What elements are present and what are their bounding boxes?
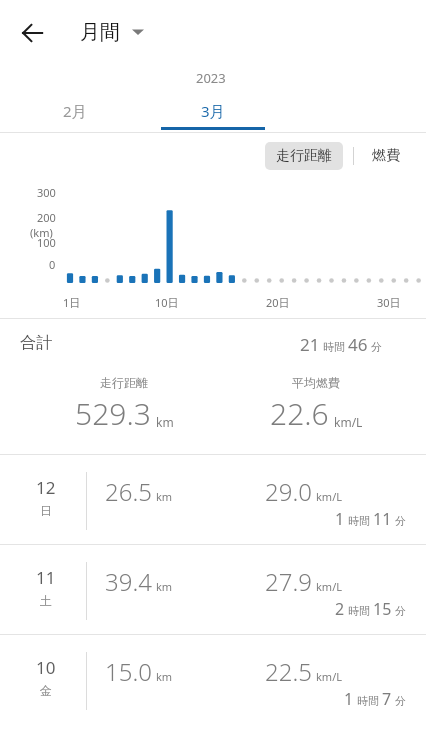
staticText: 27.9 <box>265 565 312 598</box>
staticText: 0 <box>49 257 56 272</box>
staticText: 分 <box>395 514 406 528</box>
staticText: 29.0 <box>265 475 312 508</box>
staticText: 土 <box>40 593 52 608</box>
staticText: km <box>156 669 173 684</box>
staticText: 39.4 <box>105 565 152 598</box>
staticText: 日 <box>40 503 52 518</box>
staticText: 合計 <box>20 333 52 353</box>
staticText: 平均燃費 <box>292 375 340 390</box>
staticText: 月間 <box>80 20 120 45</box>
staticText: 分 <box>395 604 406 618</box>
staticText: 46 <box>348 333 368 356</box>
staticText: km/L <box>316 489 343 504</box>
staticText: km <box>156 579 173 594</box>
staticText: 200 <box>37 210 56 225</box>
staticText: 10日 <box>155 295 179 310</box>
button[interactable]: 走行距離 <box>265 142 343 170</box>
staticText: 15 <box>373 598 392 620</box>
button[interactable]: 合計 <box>0 319 426 454</box>
staticText: 22.5 <box>265 655 312 688</box>
button[interactable]: 2月 <box>0 92 150 130</box>
staticText: 11 <box>36 566 56 589</box>
button[interactable]: Back <box>12 13 52 53</box>
staticText: 26.5 <box>105 475 152 508</box>
button[interactable]: 10 <box>0 635 426 724</box>
staticText: 金 <box>40 683 52 698</box>
staticText: 20日 <box>266 295 290 310</box>
staticText: km/L <box>334 414 363 430</box>
staticText: (km) <box>30 225 53 240</box>
staticText: 21 <box>300 333 320 356</box>
staticText: 22.6 <box>270 393 329 434</box>
button[interactable]: 3月 <box>150 92 276 130</box>
staticText: 走行距離 <box>276 147 332 165</box>
staticText: 時間 <box>323 340 345 354</box>
staticText: 1 <box>335 508 345 530</box>
button[interactable]: 燃費 <box>364 142 408 170</box>
staticText: km <box>156 489 173 504</box>
button[interactable]: 12 <box>0 455 426 544</box>
button[interactable]: 11 <box>0 545 426 634</box>
staticText: km/L <box>316 579 343 594</box>
staticText: 時間 <box>357 694 379 708</box>
staticText: 11 <box>373 508 392 530</box>
button[interactable]: 月間 <box>74 14 150 50</box>
staticText: 12 <box>36 476 56 499</box>
staticText: 100 <box>37 235 56 250</box>
staticText: 10 <box>36 656 56 679</box>
staticText: 300 <box>37 185 56 200</box>
staticText: km/L <box>316 669 343 684</box>
staticText: 1 <box>344 688 354 710</box>
staticText: 2023 <box>196 69 226 87</box>
staticText: 7 <box>382 688 392 710</box>
staticText: 走行距離 <box>100 375 148 390</box>
staticText: 分 <box>371 340 382 354</box>
staticText: 時間 <box>348 604 370 618</box>
staticText: 2 <box>335 598 345 620</box>
staticText: 3月 <box>201 101 225 121</box>
staticText: 30日 <box>377 295 401 310</box>
staticText: 燃費 <box>372 147 400 165</box>
staticText: 1日 <box>63 295 81 310</box>
staticText: 529.3 <box>75 393 151 434</box>
staticText: 2月 <box>63 101 87 121</box>
staticText: 15.0 <box>105 655 152 688</box>
staticText: 時間 <box>348 514 370 528</box>
staticText: km <box>156 414 174 430</box>
staticText: 分 <box>395 694 406 708</box>
